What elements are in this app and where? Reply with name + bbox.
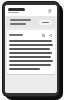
- button[interactable]: Share: [47, 32, 53, 38]
- button[interactable]: Bookmark: [7, 30, 55, 74]
- button[interactable]: [39, 20, 52, 25]
- button[interactable]: [7, 16, 55, 28]
- button[interactable]: Bookmark: [40, 32, 46, 38]
- button[interactable]: Menu: [46, 7, 54, 15]
- button[interactable]: [8, 8, 46, 13]
